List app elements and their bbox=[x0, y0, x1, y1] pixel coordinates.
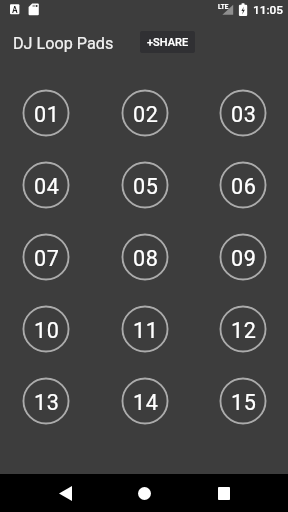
staticText: 14 bbox=[133, 390, 159, 415]
button[interactable]: 03 bbox=[219, 89, 267, 137]
button[interactable]: 11 bbox=[121, 305, 169, 353]
staticText: 11:05 bbox=[253, 3, 283, 17]
staticText: 15 bbox=[231, 390, 257, 415]
staticText: A bbox=[12, 5, 18, 15]
button[interactable]: Back bbox=[46, 474, 84, 512]
button[interactable]: 13 bbox=[22, 377, 70, 425]
button[interactable]: +SHARE bbox=[140, 31, 195, 53]
button[interactable]: 08 bbox=[121, 233, 169, 281]
button[interactable]: Home bbox=[125, 474, 163, 512]
staticText: 12 bbox=[231, 318, 257, 343]
staticText: 05 bbox=[133, 174, 159, 199]
staticText: 02 bbox=[133, 102, 159, 127]
button[interactable]: 10 bbox=[22, 305, 70, 353]
staticText: 09 bbox=[231, 246, 257, 271]
staticText: 10 bbox=[34, 318, 60, 343]
button[interactable]: 05 bbox=[121, 161, 169, 209]
staticText: 13 bbox=[34, 390, 60, 415]
button[interactable]: 09 bbox=[219, 233, 267, 281]
button[interactable]: 06 bbox=[219, 161, 267, 209]
button[interactable]: 01 bbox=[22, 89, 70, 137]
staticText: 04 bbox=[34, 174, 60, 199]
button[interactable]: 14 bbox=[121, 377, 169, 425]
button[interactable]: 04 bbox=[22, 161, 70, 209]
staticText: 03 bbox=[231, 102, 257, 127]
button[interactable]: Recent apps bbox=[205, 474, 243, 512]
staticText: +SHARE bbox=[147, 36, 189, 49]
button[interactable]: 02 bbox=[121, 89, 169, 137]
staticText: LTE bbox=[218, 3, 229, 11]
staticText: 11 bbox=[133, 318, 159, 343]
staticText: DJ Loop Pads bbox=[13, 34, 114, 53]
staticText: 07 bbox=[34, 246, 60, 271]
button[interactable]: 15 bbox=[219, 377, 267, 425]
button[interactable]: 07 bbox=[22, 233, 70, 281]
button[interactable]: 12 bbox=[219, 305, 267, 353]
staticText: 01 bbox=[34, 102, 60, 127]
staticText: 06 bbox=[231, 174, 257, 199]
staticText: 08 bbox=[133, 246, 159, 271]
